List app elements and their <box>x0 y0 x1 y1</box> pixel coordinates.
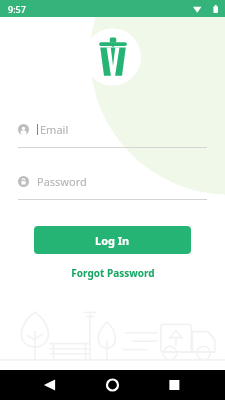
staticText: 9:57 <box>8 3 26 15</box>
staticText: Email <box>40 122 69 137</box>
other: Password icon <box>18 176 29 187</box>
staticText: Forgot Password <box>71 266 155 280</box>
staticText: Password <box>37 174 87 189</box>
button[interactable]: Log In <box>34 226 191 254</box>
button[interactable]: Account icon <box>18 118 207 148</box>
other: Account icon <box>18 124 29 135</box>
button[interactable]: Forgot Password <box>18 262 207 284</box>
button[interactable]: Password icon <box>18 170 207 200</box>
staticText: Log In <box>95 233 130 248</box>
